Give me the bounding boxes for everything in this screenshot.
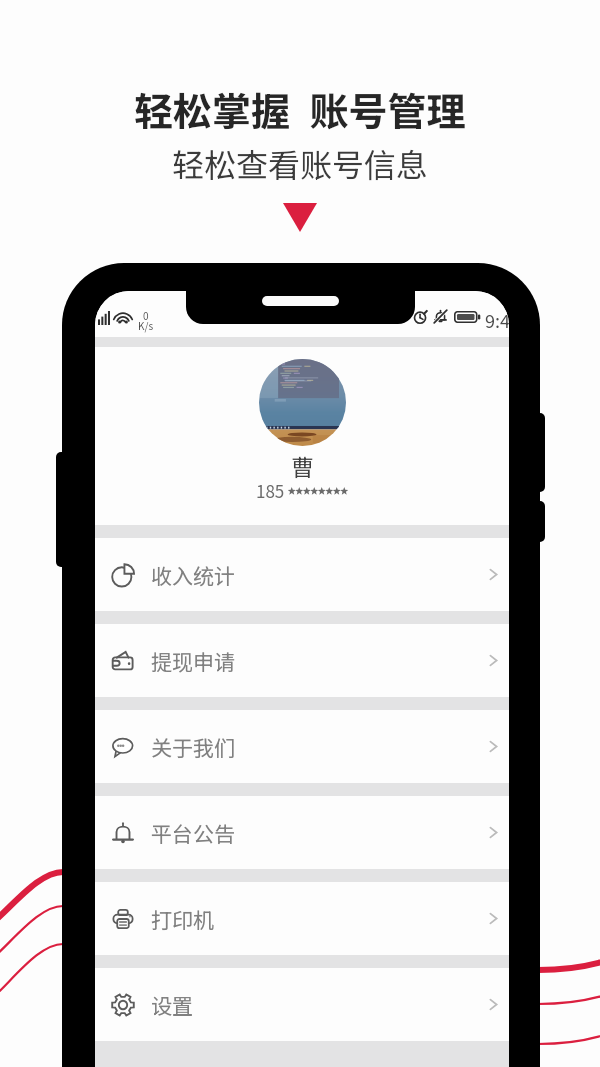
staticText: 收入统计: [151, 560, 235, 590]
staticText: 设置: [151, 990, 193, 1020]
staticText: 185: [256, 478, 285, 503]
button[interactable]: Profile photo: [95, 347, 509, 525]
button[interactable]: 打印机: [95, 882, 509, 955]
staticText: 0: [143, 308, 149, 322]
staticText: 平台公告: [151, 818, 235, 848]
staticText: 提现申请: [151, 646, 235, 676]
button[interactable]: 提现申请: [95, 624, 509, 697]
button[interactable]: 平台公告: [95, 796, 509, 869]
button[interactable]: 设置: [95, 968, 509, 1041]
other: Profile photo: [259, 359, 346, 446]
staticText: K/s: [138, 318, 154, 332]
staticText: 曹: [291, 449, 314, 482]
button[interactable]: 收入统计: [95, 538, 509, 611]
button[interactable]: 关于我们: [95, 710, 509, 783]
staticText: 轻松掌握 账号管理: [134, 81, 466, 137]
staticText: 打印机: [151, 904, 214, 934]
staticText: 9:4: [485, 307, 509, 333]
staticText: 轻松查看账号信息: [172, 140, 429, 186]
staticText: 关于我们: [151, 732, 235, 762]
